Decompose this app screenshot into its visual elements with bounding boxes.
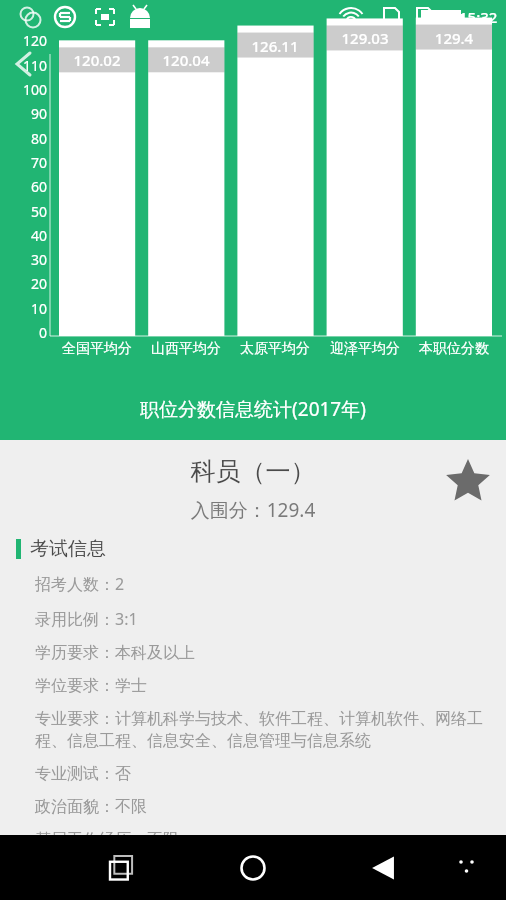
button[interactable]: 录用比例：3:1 xyxy=(0,608,506,643)
button[interactable]: More options xyxy=(447,847,489,889)
staticText: 政治面貌：不限 xyxy=(35,797,147,817)
staticText: 40 xyxy=(0,226,47,245)
staticText: 专业要求：计算机科学与技术、软件工程、计算机软件、网络工程、信息工程、信息安全、… xyxy=(35,709,490,751)
staticText: 120.02 xyxy=(59,50,135,70)
staticText: 0 xyxy=(0,323,47,342)
button[interactable]: Favorite xyxy=(442,456,494,508)
button[interactable]: Home xyxy=(229,844,277,892)
staticText: 50 xyxy=(0,202,47,221)
staticText: 考试信息 xyxy=(30,537,106,561)
staticText: 30 xyxy=(0,250,47,269)
staticText: 15:32 xyxy=(459,7,498,27)
button[interactable]: 招考人数：2 xyxy=(0,573,506,608)
staticText: 120 xyxy=(0,31,47,50)
staticText: 学位要求：学士 xyxy=(35,676,147,696)
staticText: 太原平均分 xyxy=(232,340,318,358)
button[interactable]: 政治面貌：不限 xyxy=(0,797,506,830)
staticText: 129.4 xyxy=(416,28,492,48)
staticText: 录用比例：3:1 xyxy=(35,608,138,630)
staticText: 80 xyxy=(0,129,47,148)
button[interactable]: 专业测试：否 xyxy=(0,764,506,797)
staticText: 山西平均分 xyxy=(143,340,229,358)
staticText: 招考人数：2 xyxy=(35,573,125,595)
button[interactable]: 专业要求：计算机科学与技术、软件工程、计算机软件、网络工程、信息工程、信息安全、… xyxy=(0,709,506,764)
button[interactable]: Back xyxy=(359,844,407,892)
staticText: 迎泽平均分 xyxy=(322,340,408,358)
staticText: 100 xyxy=(0,80,47,99)
staticText: 职位分数信息统计(2017年) xyxy=(0,396,506,422)
button[interactable]: 基层工作经历：不限 xyxy=(0,830,506,863)
button[interactable]: Recents xyxy=(98,844,146,892)
staticText: 90 xyxy=(0,104,47,123)
staticText: 129.03 xyxy=(327,28,403,48)
staticText: 20 xyxy=(0,274,47,293)
staticText: 学历要求：本科及以上 xyxy=(35,643,195,663)
staticText: 70 xyxy=(0,153,47,172)
staticText: 科员（一） xyxy=(0,456,506,487)
button[interactable]: 学位要求：学士 xyxy=(0,676,506,709)
staticText: 专业测试：否 xyxy=(35,764,131,784)
staticText: 120.04 xyxy=(148,50,224,70)
staticText: 全国平均分 xyxy=(54,340,140,358)
staticText: 60 xyxy=(0,177,47,196)
staticText: 入围分：129.4 xyxy=(0,497,506,523)
staticText: 基层工作经历：不限 xyxy=(35,830,179,850)
button[interactable]: 学历要求：本科及以上 xyxy=(0,643,506,676)
staticText: 本职位分数 xyxy=(411,340,497,358)
staticText: 126.11 xyxy=(237,36,313,56)
staticText: 110 xyxy=(0,56,47,75)
staticText: 10 xyxy=(0,299,47,318)
